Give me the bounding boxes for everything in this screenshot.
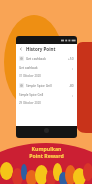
staticText: Kumpulkan Point Reward bbox=[29, 145, 64, 160]
staticText: › bbox=[72, 66, 74, 71]
staticText: Simple Spice Grill bbox=[19, 93, 44, 97]
staticText: History Point bbox=[26, 46, 56, 52]
staticText: +50 bbox=[68, 57, 74, 61]
staticText: › bbox=[72, 93, 74, 98]
staticText: 29 Oktober 2020 bbox=[19, 101, 41, 105]
button[interactable]: Simple Spice Grill bbox=[16, 80, 77, 107]
other: Back bbox=[19, 47, 23, 51]
button[interactable]: Get cashback bbox=[16, 53, 77, 80]
staticText: Get cashback bbox=[26, 57, 46, 61]
staticText: 31 Oktober 2020 bbox=[19, 74, 41, 78]
staticText: -80 bbox=[69, 84, 74, 88]
staticText: Get cashback bbox=[19, 66, 38, 70]
staticText: Simple Spice Grill bbox=[26, 84, 52, 88]
button[interactable]: Back bbox=[16, 44, 77, 53]
